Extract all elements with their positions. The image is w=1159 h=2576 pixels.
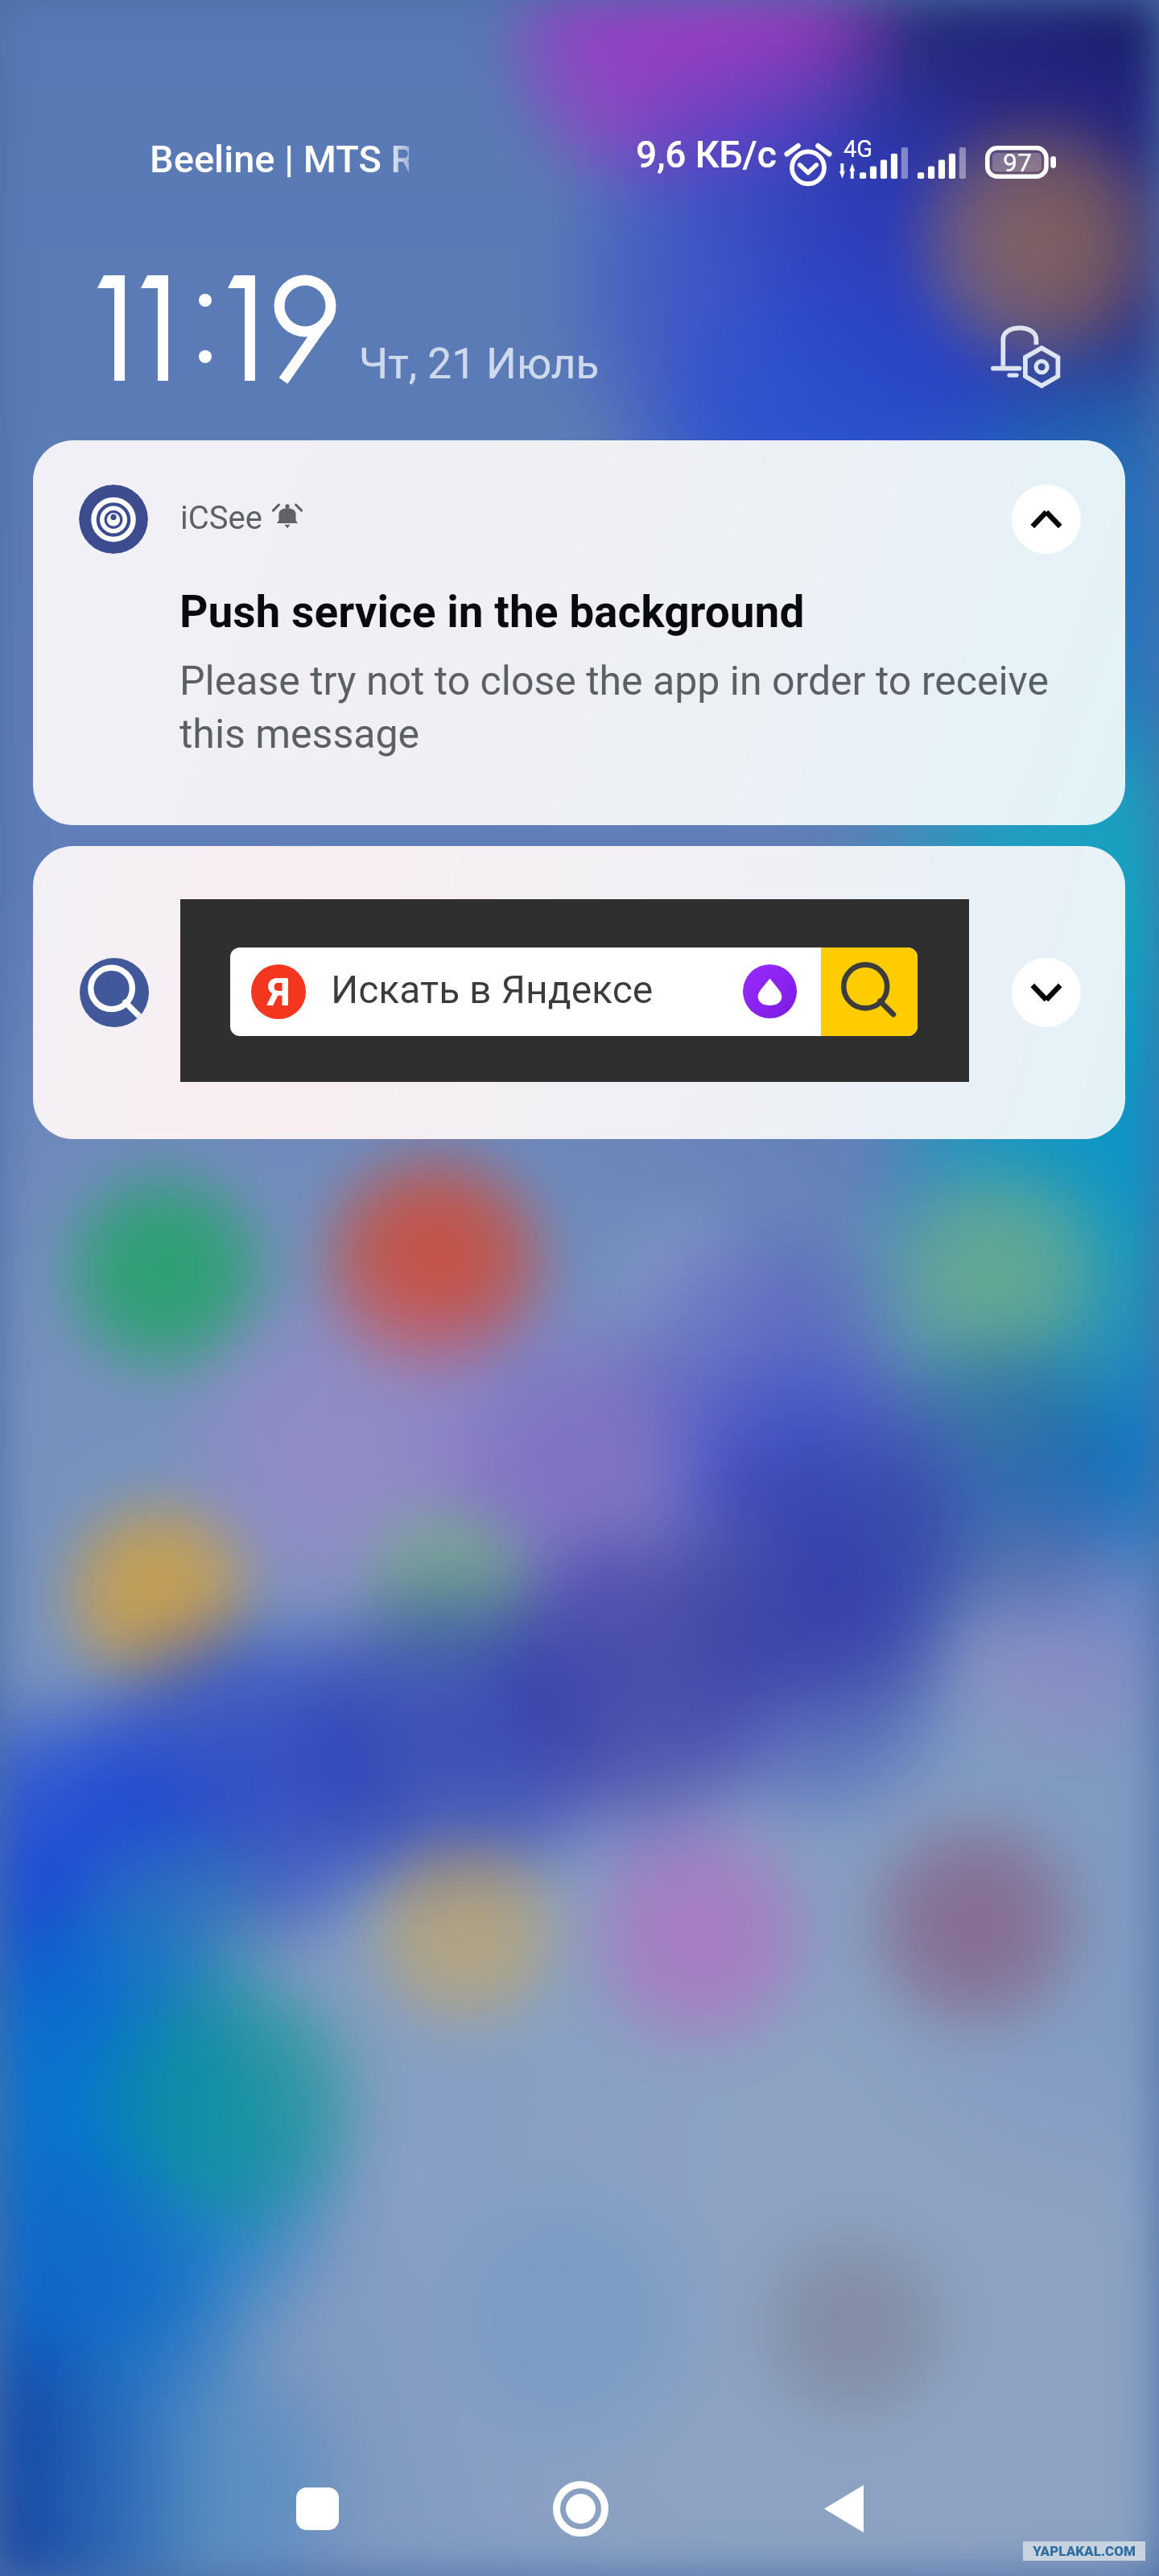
button[interactable]: Home — [532, 2460, 629, 2557]
staticText: 97 — [1003, 147, 1032, 178]
staticText: iCSee — [180, 499, 262, 537]
button[interactable]: Collapse — [1012, 485, 1081, 554]
staticText: Я — [267, 969, 291, 1014]
button[interactable]: Search — [821, 947, 918, 1036]
button[interactable]: Search — [80, 958, 149, 1027]
button[interactable]: Back — [795, 2460, 892, 2557]
staticText: 4G — [843, 135, 873, 163]
button[interactable]: Notification settings — [986, 320, 1070, 404]
staticText: YAPLAKAL.COM — [1033, 2543, 1136, 2559]
staticText: Push service in the background — [179, 586, 805, 638]
staticText: 9,6 КБ/c — [636, 133, 777, 176]
staticText: Beeline | MTS R — [150, 137, 409, 181]
staticText: Please try not to close the app in order… — [179, 658, 1061, 758]
button[interactable]: Recents — [269, 2460, 365, 2557]
staticText: Искать в Яндексе — [331, 967, 654, 1012]
button[interactable]: Я — [180, 899, 969, 1082]
button[interactable]: iCSee — [33, 440, 1125, 825]
button[interactable]: Expand — [1012, 958, 1081, 1027]
staticText: Чт, 21 Июль — [359, 339, 600, 389]
button[interactable]: Search — [33, 846, 1125, 1139]
